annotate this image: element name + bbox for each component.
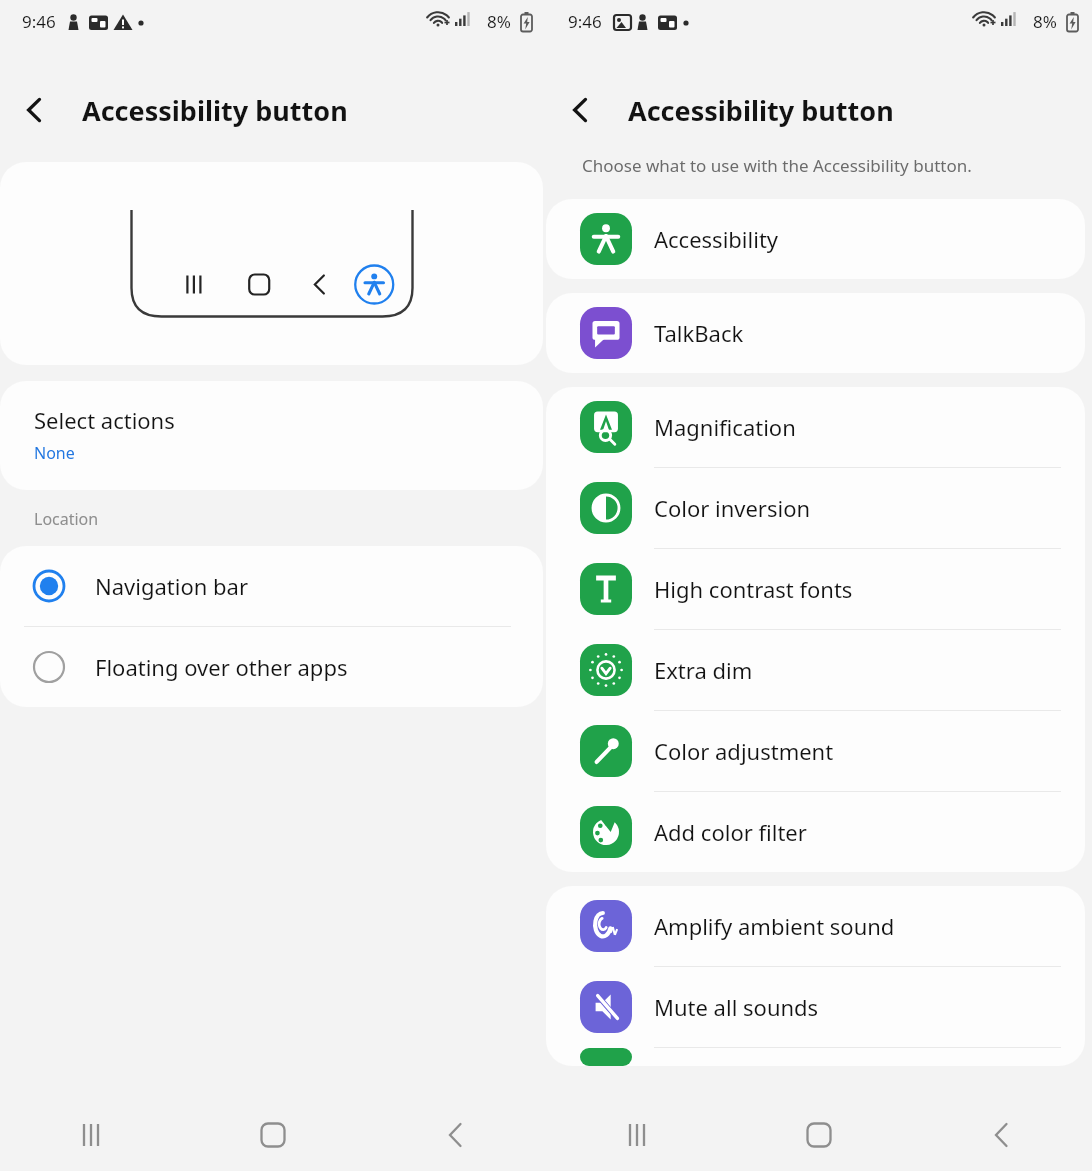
button[interactable]: Mute all sounds: [546, 967, 1085, 1048]
staticText: Floating over other apps: [95, 652, 348, 682]
staticText: None: [34, 442, 75, 464]
button[interactable]: Navigation bar: [0, 546, 543, 626]
staticText: Select actions: [34, 405, 175, 435]
staticText: Color adjustment: [654, 736, 834, 766]
button[interactable]: Color adjustment: [546, 711, 1085, 792]
staticText: Amplify ambient sound: [654, 911, 895, 941]
staticText: Color inversion: [654, 493, 811, 523]
staticText: 8%: [487, 10, 511, 33]
staticText: Location: [34, 508, 99, 530]
button[interactable]: High contrast fonts: [546, 549, 1085, 630]
button[interactable]: Accessibility: [546, 199, 1085, 279]
button[interactable]: Add color filter: [546, 792, 1085, 872]
staticText: Accessibility: [654, 224, 779, 254]
button[interactable]: TalkBack: [546, 293, 1085, 373]
staticText: TalkBack: [654, 318, 744, 348]
staticText: High contrast fonts: [654, 574, 853, 604]
button[interactable]: Color inversion: [546, 468, 1085, 549]
button[interactable]: Extra dim: [546, 630, 1085, 711]
staticText: Add color filter: [654, 817, 807, 847]
staticText: 8%: [1033, 10, 1057, 33]
button[interactable]: Back: [546, 72, 616, 148]
staticText: Choose what to use with the Accessibilit…: [582, 154, 972, 177]
button[interactable]: Magnification: [546, 387, 1085, 468]
button[interactable]: Floating over other apps: [0, 627, 543, 707]
button[interactable]: Back: [0, 72, 70, 148]
button[interactable]: Select actions: [0, 381, 543, 490]
staticText: Extra dim: [654, 655, 753, 685]
staticText: Mute all sounds: [654, 992, 819, 1022]
staticText: 9:46: [22, 10, 56, 33]
staticText: Accessibility button: [82, 92, 348, 129]
staticText: Navigation bar: [95, 571, 248, 601]
staticText: Accessibility button: [628, 92, 894, 129]
staticText: Magnification: [654, 412, 796, 442]
staticText: 9:46: [568, 10, 602, 33]
button[interactable]: Amplify ambient sound: [546, 886, 1085, 967]
